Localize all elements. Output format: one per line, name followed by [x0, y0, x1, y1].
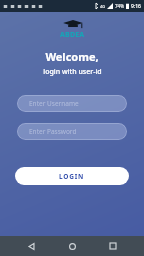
button[interactable]: Back: [21, 236, 41, 256]
staticText: 4G: [100, 4, 106, 9]
staticText: ABDEA: [60, 30, 85, 40]
staticText: Enter Password: [29, 127, 77, 136]
button[interactable]: Enter Username: [17, 95, 127, 112]
button[interactable]: LOGIN: [15, 167, 129, 185]
button[interactable]: Home: [62, 236, 82, 256]
staticText: login with user-id: [43, 67, 102, 77]
staticText: Welcome,: [45, 49, 99, 64]
staticText: 74%: [115, 3, 124, 9]
staticText: LOGIN: [59, 172, 85, 181]
staticText: 9:16: [131, 3, 141, 10]
button[interactable]: Recent apps: [103, 236, 123, 256]
staticText: Enter Username: [29, 99, 79, 108]
button[interactable]: Enter Password: [17, 123, 127, 140]
